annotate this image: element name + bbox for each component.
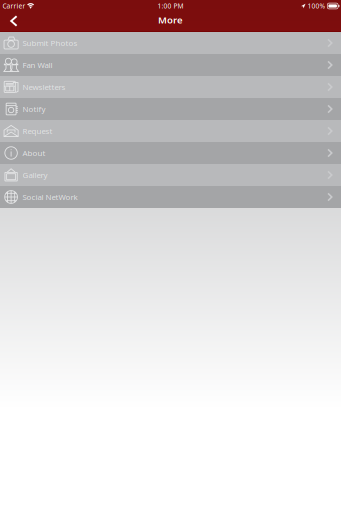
- button[interactable]: Submit Photos: [0, 32, 341, 54]
- staticText: 1:00 PM: [157, 1, 183, 11]
- staticText: Request: [22, 126, 52, 136]
- staticText: Submit Photos: [22, 38, 77, 48]
- staticText: Carrier: [2, 1, 25, 11]
- button[interactable]: Gallery: [0, 164, 341, 186]
- staticText: More: [158, 13, 183, 26]
- button[interactable]: Notify: [0, 98, 341, 120]
- button[interactable]: Newsletters: [0, 76, 341, 98]
- button[interactable]: About: [0, 142, 341, 164]
- staticText: Notify: [22, 104, 45, 114]
- staticText: About: [22, 148, 45, 158]
- staticText: Fan Wall: [22, 60, 52, 70]
- staticText: 100%: [307, 1, 325, 11]
- button[interactable]: Back: [0, 12, 25, 32]
- button[interactable]: Request: [0, 120, 341, 142]
- button[interactable]: Fan Wall: [0, 54, 341, 76]
- button[interactable]: Social NetWork: [0, 186, 341, 208]
- staticText: Gallery: [22, 170, 47, 180]
- staticText: Newsletters: [22, 82, 65, 92]
- staticText: Social NetWork: [22, 192, 77, 202]
